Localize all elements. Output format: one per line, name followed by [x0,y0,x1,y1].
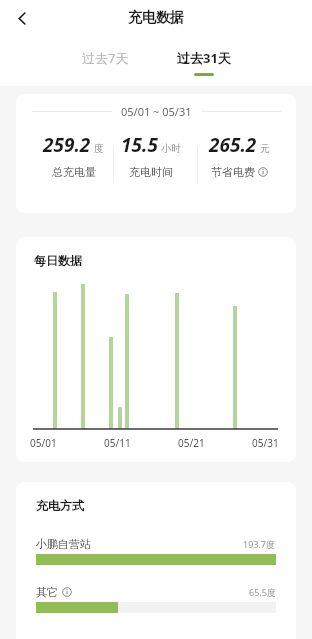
staticText: 充电方式 [36,498,84,513]
staticText: 265.2 [209,132,257,158]
staticText: 05/31 [252,436,279,450]
staticText: 其它 [36,585,58,599]
staticText: 节省电费 [211,165,255,179]
staticText: 小时 [161,142,181,155]
staticText: 总充电量 [52,165,96,179]
staticText: 193.7度 [243,538,276,550]
staticText: 05/11 [104,436,131,450]
staticText: 充电时间 [129,165,173,179]
staticText: 充电数据 [128,9,184,27]
staticText: 15.5 [121,132,158,158]
staticText: 每日数据 [34,253,82,268]
staticText: 小鹏自营站 [36,537,91,551]
staticText: 05/21 [178,436,205,450]
staticText: 元 [260,142,270,155]
staticText: 259.2 [43,132,91,158]
staticText: 过去7天 [82,49,129,67]
staticText: 过去31天 [177,49,231,67]
button[interactable]: 过去31天 [177,49,231,76]
staticText: 05/01 ~ 05/31 [121,104,192,119]
staticText: 05/01 [30,436,57,450]
button[interactable] [8,4,36,32]
button[interactable]: 过去7天 [82,49,129,76]
staticText: 65.5度 [249,586,276,598]
staticText: 度 [94,142,104,155]
